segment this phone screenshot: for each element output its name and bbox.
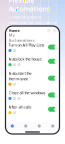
- button[interactable]: After all calls: [5, 102, 59, 116]
- staticText: Create an action or automation for every…: [8, 14, 56, 30]
- button[interactable]: Auto-start the thermostat: [5, 68, 59, 88]
- staticText: Flexible Automations: [8, 0, 49, 13]
- button[interactable]: Profile: [51, 28, 56, 32]
- staticText: Auto-lock the house: [8, 56, 41, 62]
- staticText: Auto-start the thermostat: [8, 71, 31, 81]
- staticText: Home: [8, 28, 19, 33]
- staticText: Turn on All Play Lists: [8, 42, 44, 47]
- button[interactable]: Tab 3: [32, 122, 46, 130]
- staticText: Close all the windows: [8, 90, 45, 95]
- staticText: My Automations: [8, 32, 34, 43]
- button[interactable]: Close all the windows: [5, 88, 59, 102]
- button[interactable]: Tab 2: [19, 122, 32, 130]
- button[interactable]: Auto-lock the house: [5, 54, 59, 68]
- button[interactable]: Tab 4: [46, 122, 59, 130]
- button[interactable]: Turn on All Play Lists: [5, 40, 59, 54]
- staticText: After all calls: [8, 104, 31, 110]
- button[interactable]: Search: [47, 28, 51, 32]
- button[interactable]: Tab 1: [5, 122, 19, 130]
